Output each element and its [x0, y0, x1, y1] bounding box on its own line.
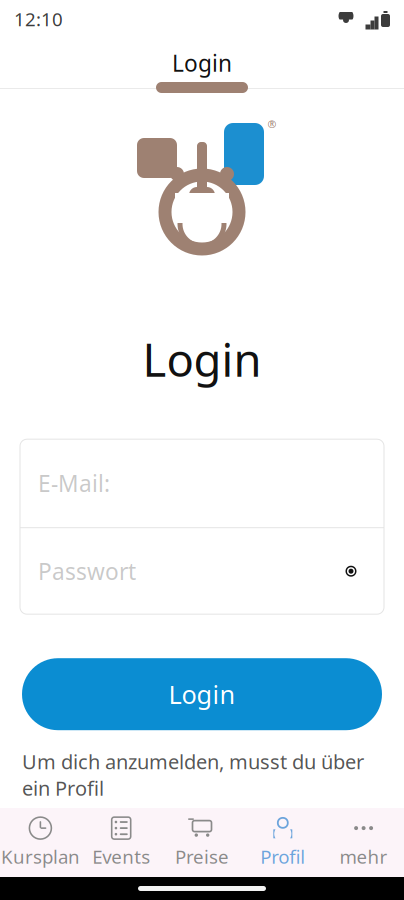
button[interactable]: Profil: [242, 808, 323, 877]
staticText: Kursplan: [1, 844, 80, 869]
button[interactable]: Preise: [162, 808, 242, 877]
button[interactable]: Events: [81, 808, 162, 877]
staticText: Events: [92, 844, 150, 869]
staticText: mehr: [340, 844, 388, 869]
staticText: Preise: [175, 844, 229, 869]
staticText: Login: [168, 677, 235, 711]
button[interactable]: Profil erstellen: [135, 838, 269, 872]
staticText: Login: [172, 48, 232, 78]
staticText: Passwort: [38, 556, 136, 586]
staticText: verfügen: [22, 803, 105, 830]
staticText: Login: [142, 329, 261, 389]
button[interactable]: Login: [22, 658, 382, 730]
button[interactable]: Show password: [336, 558, 366, 584]
staticText: 12:10: [14, 7, 63, 31]
staticText: Profil erstellen: [135, 841, 269, 867]
staticText: ®: [267, 117, 276, 131]
staticText: Um dich anzumelden, musst du über ein Pr…: [22, 748, 364, 801]
button[interactable]: mehr: [323, 808, 404, 877]
staticText: E-Mail:: [38, 468, 110, 498]
button[interactable]: Kursplan: [0, 808, 81, 877]
staticText: Profil: [260, 844, 305, 869]
button[interactable]: E-Mail:: [20, 439, 384, 527]
